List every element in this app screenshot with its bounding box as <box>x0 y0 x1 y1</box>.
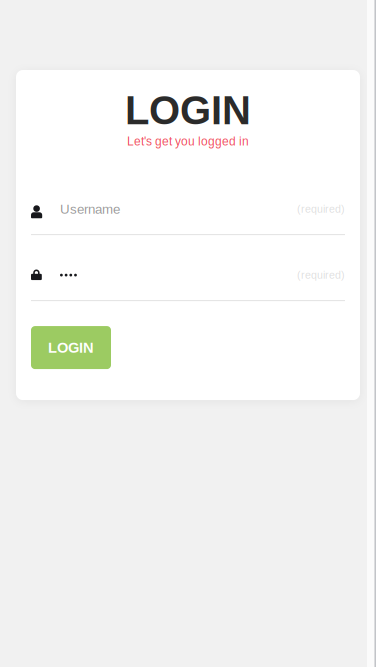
button[interactable]: LOGIN <box>31 326 111 369</box>
staticText: Username <box>60 202 120 216</box>
staticText: LOGIN <box>48 339 94 356</box>
staticText: (required) <box>297 269 345 281</box>
staticText: (required) <box>297 203 345 215</box>
staticText: LOGIN <box>125 88 251 133</box>
staticText: Let's get you logged in <box>127 135 249 148</box>
